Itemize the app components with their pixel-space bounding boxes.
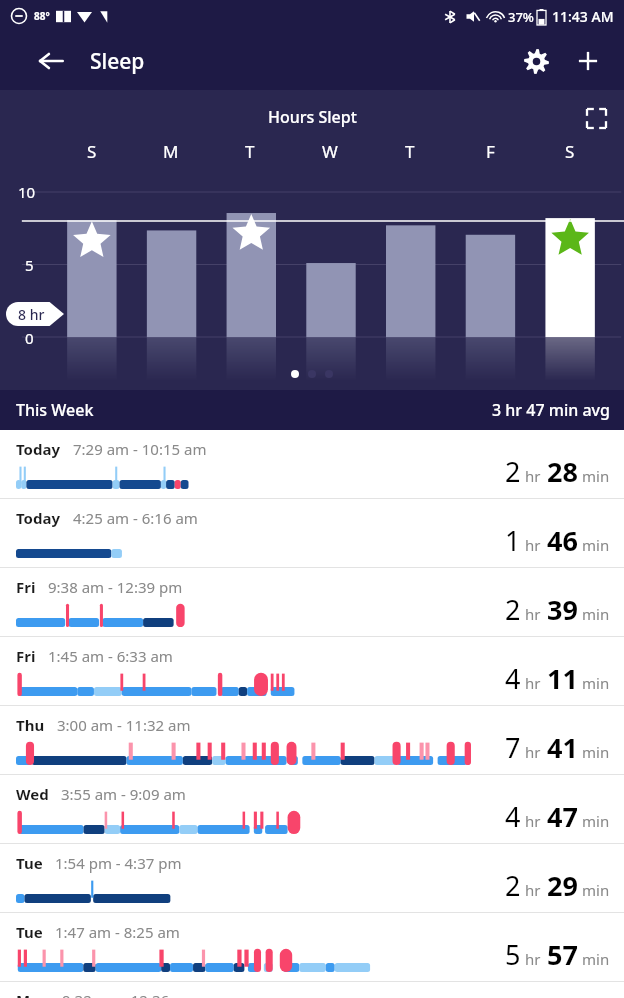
staticText: 7 <box>505 729 521 766</box>
staticText: Hours Slept <box>268 106 357 128</box>
staticText: Today <box>16 508 61 528</box>
staticText: 37% <box>508 8 534 26</box>
staticText: 3:00 am - 11:32 am <box>57 715 191 735</box>
staticText: 57 <box>547 936 578 973</box>
staticText: hr <box>525 880 541 900</box>
staticText: 5 <box>25 255 34 275</box>
staticText: Fri <box>16 577 36 597</box>
staticText: Fri <box>16 646 36 666</box>
staticText: hr <box>525 466 541 486</box>
staticText: 1:54 pm - 4:37 pm <box>55 853 182 873</box>
staticText: 2 <box>505 453 521 490</box>
staticText: min <box>582 673 610 693</box>
staticText: 5 <box>505 936 521 973</box>
staticText: 3:55 am - 9:09 am <box>61 784 186 804</box>
staticText: T <box>245 140 255 163</box>
button[interactable]: Fri <box>0 637 624 705</box>
staticText: M <box>163 140 179 163</box>
staticText: 11:43 AM <box>552 7 614 26</box>
staticText: 1:47 am - 8:25 am <box>55 922 180 942</box>
staticText: 4 <box>505 660 521 697</box>
button[interactable]: Wed <box>0 775 624 843</box>
button[interactable]: Thu <box>0 706 624 774</box>
staticText: 8 hr <box>18 305 45 324</box>
staticText: Wed <box>16 784 49 804</box>
staticText: Tue <box>16 922 43 942</box>
staticText: min <box>582 949 610 969</box>
staticText: 1:45 am - 6:33 am <box>48 646 173 666</box>
staticText: 1 <box>505 522 521 559</box>
staticText: min <box>582 811 610 831</box>
staticText: S <box>87 140 97 163</box>
button[interactable]: Tue <box>0 913 624 981</box>
staticText: 9:32 am - 12:36 pm <box>62 990 197 998</box>
staticText: W <box>322 140 338 163</box>
staticText: Thu <box>16 715 45 735</box>
staticText: Tue <box>16 853 43 873</box>
staticText: 4 <box>505 798 521 835</box>
staticText: hr <box>525 673 541 693</box>
staticText: min <box>582 535 610 555</box>
button[interactable]: Today <box>0 499 624 567</box>
staticText: min <box>582 604 610 624</box>
staticText: 2 <box>505 867 521 904</box>
staticText: Sleep <box>90 47 145 76</box>
staticText: min <box>582 742 610 762</box>
staticText: T <box>405 140 415 163</box>
button[interactable]: Fullscreen <box>576 98 616 138</box>
staticText: S <box>565 140 575 163</box>
button[interactable]: Add sleep log <box>566 39 610 83</box>
staticText: 46 <box>547 522 578 559</box>
staticText: 28 <box>547 453 578 490</box>
button[interactable]: Back <box>30 40 72 82</box>
staticText: min <box>582 880 610 900</box>
staticText: 7:29 am - 10:15 am <box>73 439 207 459</box>
staticText: 88° <box>34 9 50 23</box>
staticText: This Week <box>16 399 94 421</box>
staticText: 4:25 am - 6:16 am <box>73 508 198 528</box>
staticText: 41 <box>547 729 578 766</box>
staticText: 47 <box>547 798 578 835</box>
staticText: hr <box>525 949 541 969</box>
staticText: Mon <box>16 990 50 998</box>
button[interactable]: Today <box>0 430 624 498</box>
staticText: 29 <box>547 867 578 904</box>
staticText: hr <box>525 811 541 831</box>
button[interactable]: Settings <box>514 39 558 83</box>
button[interactable]: Tue <box>0 844 624 912</box>
button[interactable]: Fri <box>0 568 624 636</box>
staticText: hr <box>525 604 541 624</box>
staticText: hr <box>525 535 541 555</box>
staticText: 9:38 am - 12:39 pm <box>48 577 183 597</box>
staticText: Today <box>16 439 61 459</box>
staticText: 0 <box>25 328 34 348</box>
staticText: 3 hr 47 min avg <box>492 399 610 421</box>
staticText: 39 <box>547 591 578 628</box>
staticText: 11 <box>547 660 578 697</box>
staticText: 10 <box>18 182 36 202</box>
staticText: min <box>582 466 610 486</box>
staticText: hr <box>525 742 541 762</box>
staticText: F <box>486 140 495 163</box>
staticText: 2 <box>505 591 521 628</box>
